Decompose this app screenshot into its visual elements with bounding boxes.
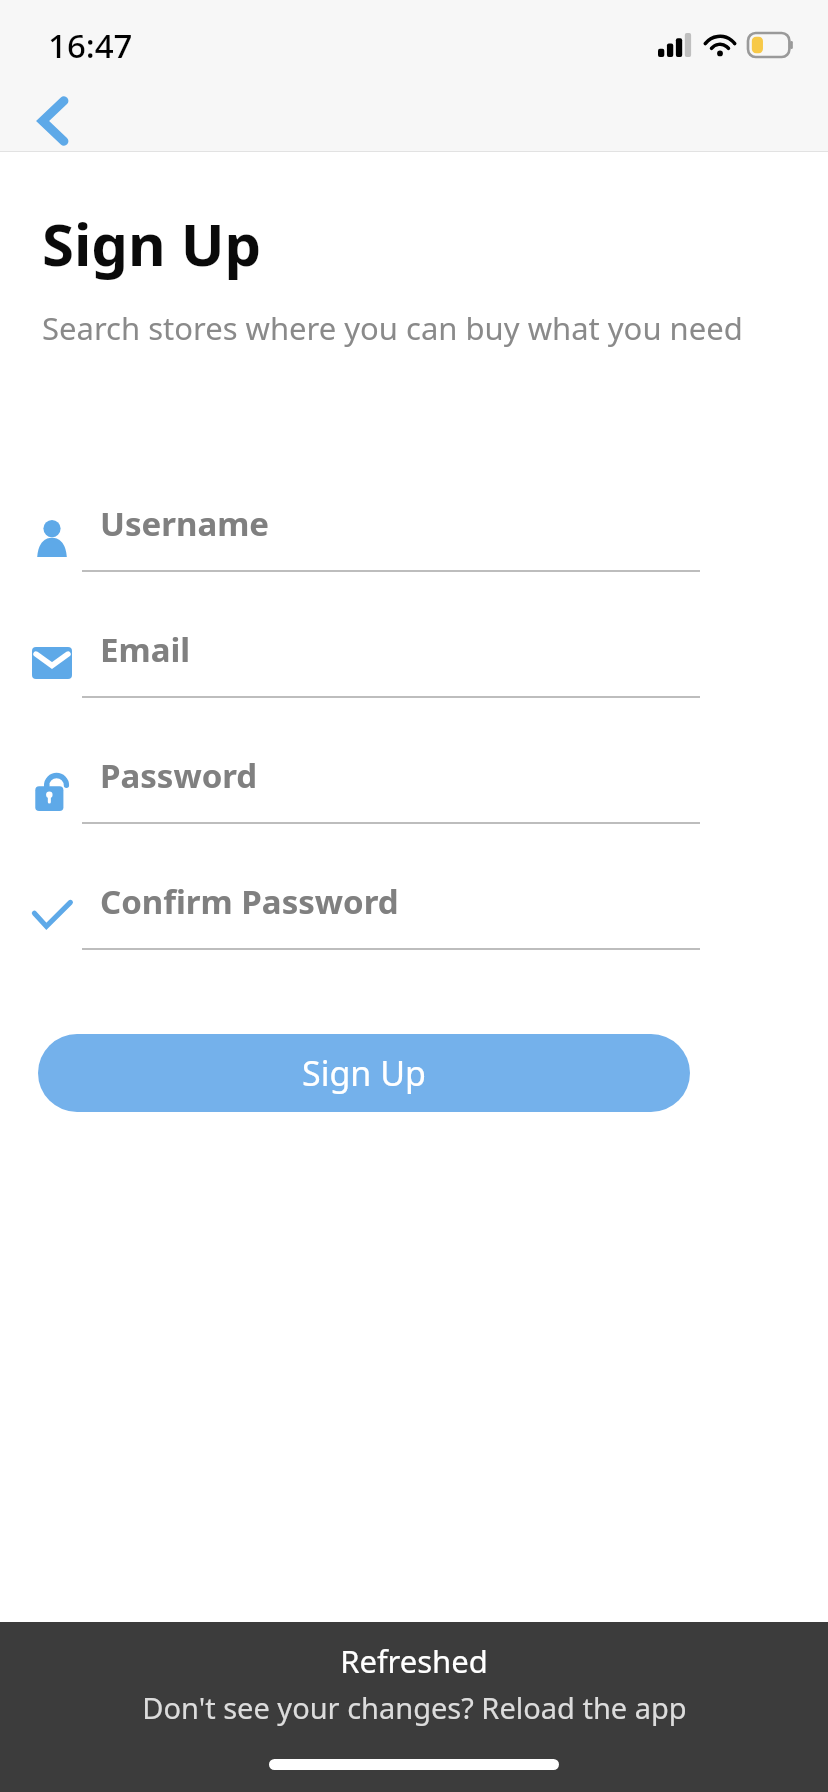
staticText: Confirm Password — [100, 879, 399, 924]
staticText: Username — [100, 501, 270, 546]
staticText: 16:47 — [48, 23, 133, 68]
button[interactable]: Username — [0, 501, 828, 572]
staticText: Refreshed — [340, 1640, 488, 1682]
staticText: Search stores where you can buy what you… — [42, 307, 743, 349]
button[interactable]: Confirm Password — [0, 879, 828, 950]
staticText: Password — [100, 753, 258, 798]
button[interactable]: Email — [0, 627, 828, 698]
staticText: Don't see your changes? Reload the app — [142, 1688, 687, 1727]
staticText: Sign Up — [42, 204, 262, 283]
button[interactable]: Back — [20, 90, 86, 152]
button[interactable]: Password — [0, 753, 828, 824]
button[interactable]: Sign Up — [38, 1034, 690, 1112]
staticText: Sign Up — [302, 1050, 426, 1096]
staticText: Email — [100, 627, 191, 672]
